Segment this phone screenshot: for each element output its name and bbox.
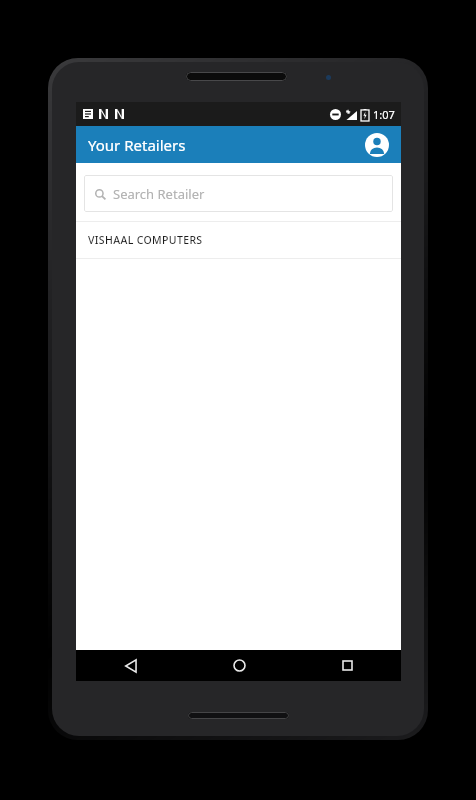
staticText: Search Retailer [113, 185, 205, 203]
button[interactable]: Back [76, 650, 185, 681]
button[interactable]: Recents [293, 650, 401, 681]
button[interactable]: Home [185, 650, 293, 681]
button[interactable]: VISHAAL COMPUTERS [76, 222, 401, 258]
staticText: 1:07 [373, 107, 395, 122]
button[interactable]: Search Retailer [84, 175, 393, 212]
button[interactable]: Account [362, 130, 392, 160]
staticText: Your Retailers [88, 135, 186, 155]
staticText: VISHAAL COMPUTERS [88, 233, 203, 247]
